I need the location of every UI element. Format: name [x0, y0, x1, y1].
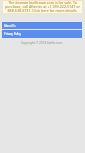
button[interactable]: The domain bizificnow.com is for sale. T…: [2, 0, 83, 14]
staticText: Privacy Policy: [4, 32, 21, 36]
staticText: The domain bizificnow.com is for sale. T…: [5, 0, 80, 13]
staticText: About Us: [4, 24, 16, 28]
staticText: Copyright © 2018 bizific.com: [0, 41, 83, 45]
button[interactable]: About Us: [2, 22, 82, 29]
button[interactable]: Privacy Policy: [2, 30, 82, 38]
